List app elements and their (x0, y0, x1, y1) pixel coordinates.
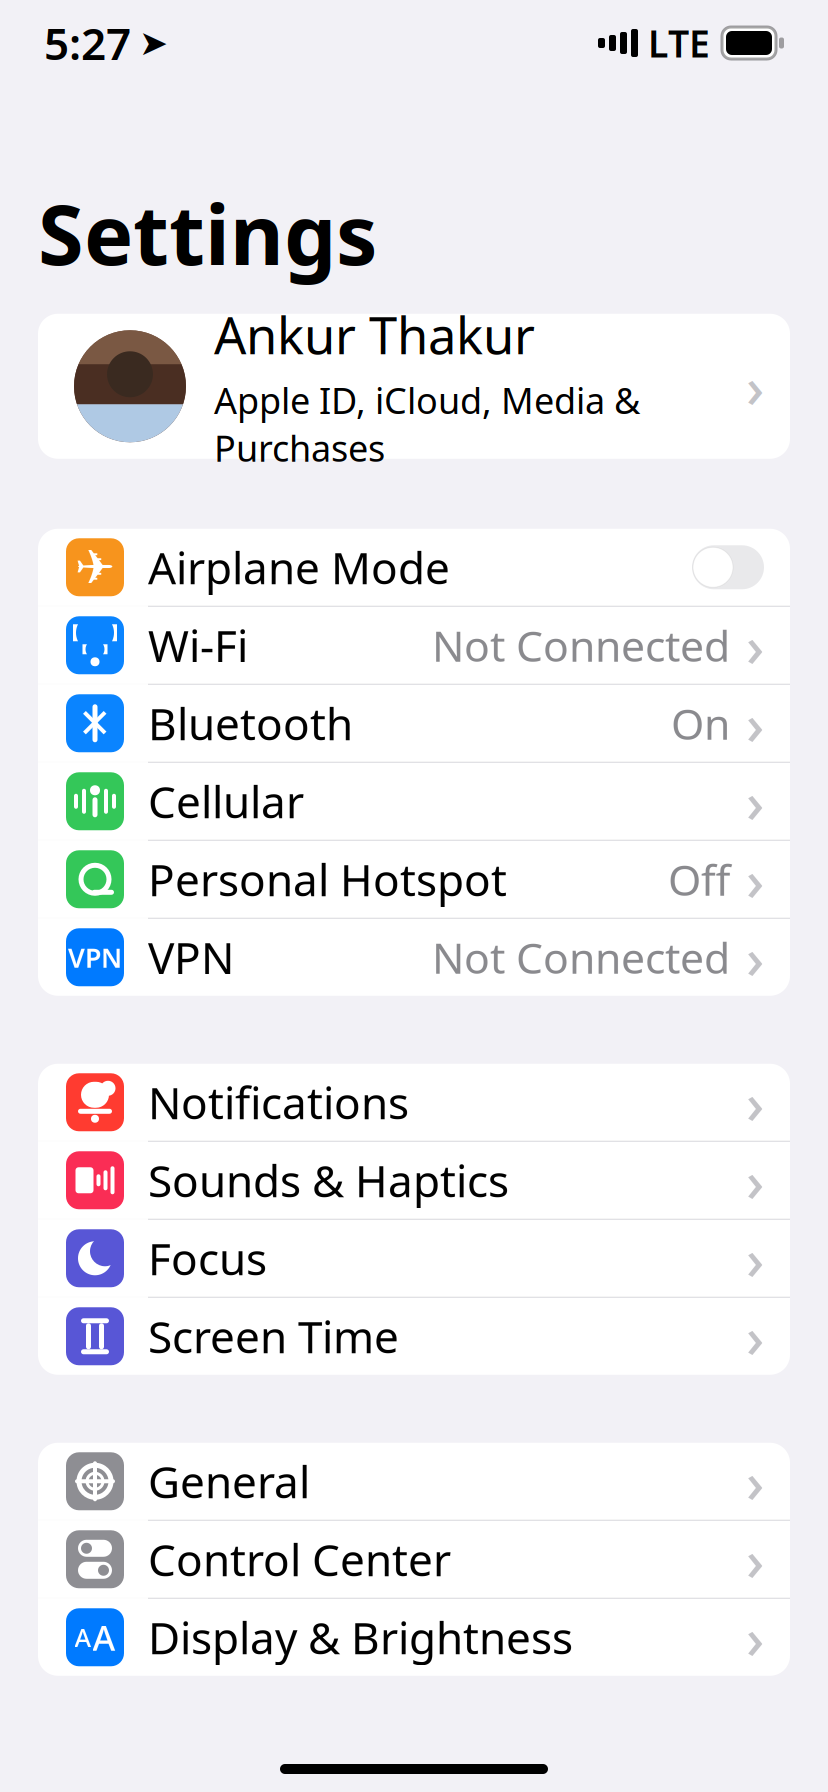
button[interactable]: Control Center (38, 1521, 790, 1598)
staticText: LTE (648, 18, 710, 68)
staticText: Personal Hotspot (148, 850, 507, 908)
staticText: Airplane Mode (148, 538, 450, 596)
staticText: › (746, 1600, 764, 1674)
staticText: VPN (68, 940, 122, 975)
staticText: Notifications (148, 1073, 409, 1131)
staticText: Off (668, 851, 730, 908)
staticText: VPN (148, 928, 234, 986)
button[interactable]: A (38, 1599, 790, 1676)
staticText: › (746, 920, 764, 994)
staticText: Settings (38, 178, 377, 288)
staticText: A (74, 1620, 91, 1654)
button[interactable]: Personal Hotspot (38, 841, 790, 918)
staticText: General (148, 1452, 310, 1510)
button[interactable]: Cellular (38, 763, 790, 840)
staticText: Control Center (148, 1530, 451, 1588)
staticText: › (746, 686, 764, 760)
staticText: Screen Time (148, 1307, 399, 1365)
staticText: › (746, 1522, 764, 1596)
staticText: › (746, 608, 764, 682)
staticText: ✈ (75, 540, 115, 594)
staticText: › (746, 764, 764, 838)
button[interactable]: Focus (38, 1220, 790, 1297)
staticText: Focus (148, 1229, 267, 1287)
button[interactable]: ✈ (38, 529, 790, 606)
staticText: Not Connected (432, 617, 730, 674)
staticText: › (746, 1444, 764, 1518)
button[interactable]: Wi-Fi (38, 607, 790, 684)
staticText: › (746, 1299, 764, 1373)
staticText: Cellular (148, 772, 304, 830)
staticText: › (746, 842, 764, 916)
staticText: Bluetooth (148, 694, 353, 752)
button[interactable]: Sounds & Haptics (38, 1142, 790, 1219)
button[interactable]: General (38, 1443, 790, 1520)
staticText: › (746, 349, 764, 423)
button[interactable]: ✕ (38, 685, 790, 762)
button[interactable]: Ankur Thakur (38, 314, 790, 459)
button[interactable]: Screen Time (38, 1298, 790, 1375)
button[interactable]: VPN (38, 919, 790, 996)
staticText: › (746, 1143, 764, 1217)
staticText: ✕ (78, 701, 112, 746)
staticText: Display & Brightness (148, 1608, 573, 1666)
staticText: On (671, 695, 730, 752)
staticText: Apple ID, iCloud, Media & Purchases (214, 376, 640, 472)
staticText: Wi-Fi (148, 616, 248, 674)
staticText: 5:27 (44, 14, 131, 72)
staticText: A (92, 1614, 115, 1660)
staticText: › (746, 1221, 764, 1295)
staticText: ➤ (139, 23, 168, 63)
staticText: Not Connected (432, 929, 730, 986)
staticText: › (746, 1065, 764, 1139)
staticText: Ankur Thakur (214, 301, 535, 368)
button[interactable]: Notifications (38, 1064, 790, 1141)
staticText: Sounds & Haptics (148, 1151, 509, 1209)
